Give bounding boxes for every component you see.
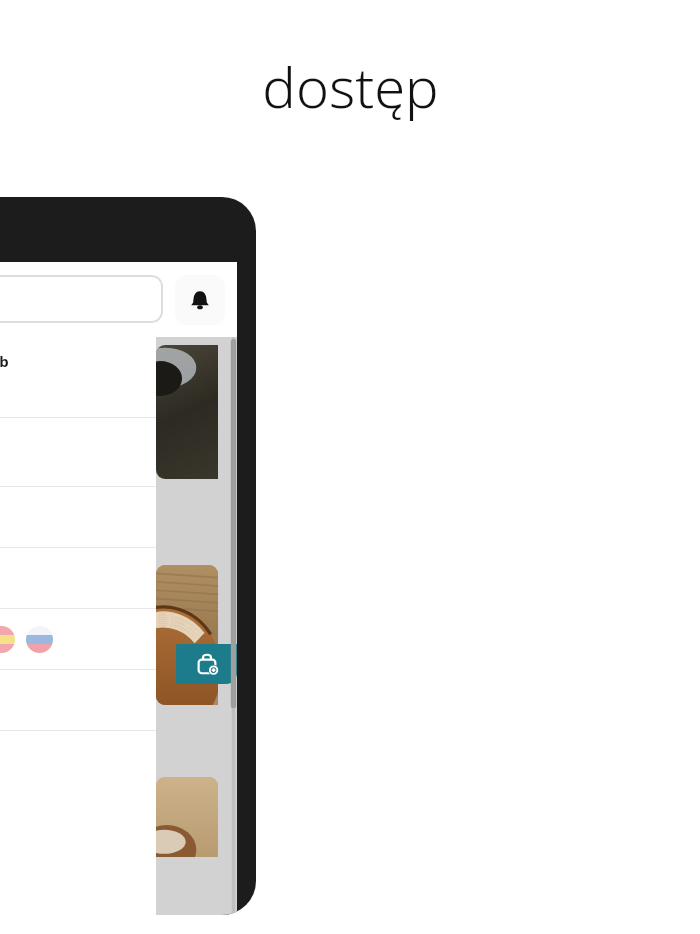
staticText: Świeży chleb (0, 351, 9, 371)
button[interactable]: Zdjęcie chleba (156, 565, 218, 705)
button[interactable]: Zdjęcie produktu (156, 345, 218, 479)
button[interactable]: Powiadomienia (175, 275, 225, 325)
button[interactable]: Dodaj do koszyka (176, 644, 237, 684)
button[interactable]: Świeży chleb (0, 337, 156, 417)
button[interactable]: Zdjęcie produktu (156, 777, 218, 857)
staticText: dostęp (262, 48, 439, 124)
button[interactable] (0, 609, 156, 669)
button[interactable]: Szukaj... (0, 275, 163, 323)
